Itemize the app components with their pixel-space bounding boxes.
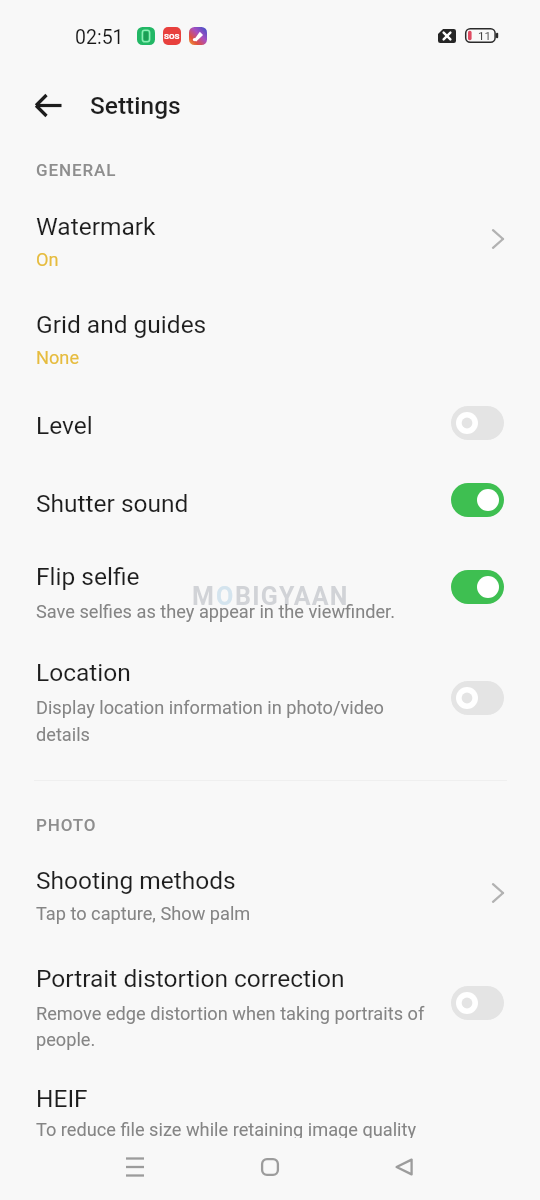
button[interactable]: Back xyxy=(373,1136,435,1198)
button[interactable]: HEIF xyxy=(0,1068,540,1138)
staticText: M xyxy=(192,582,216,611)
button[interactable]: Toggle off xyxy=(451,681,504,715)
staticText: Settings xyxy=(90,91,181,120)
staticText: people. xyxy=(36,1029,96,1050)
staticText: 02:51 xyxy=(75,26,124,49)
button[interactable]: Watermark xyxy=(0,198,540,282)
button[interactable]: Shooting methods xyxy=(0,850,540,934)
button[interactable]: Recent apps xyxy=(104,1136,166,1198)
button[interactable]: Location xyxy=(0,642,540,752)
button[interactable]: Toggle on xyxy=(451,483,504,517)
staticText: Watermark xyxy=(36,212,156,241)
staticText: Tap to capture, Show palm xyxy=(36,903,251,924)
button[interactable]: Back xyxy=(22,79,74,131)
button[interactable]: Flip selfie xyxy=(0,546,540,630)
button[interactable]: Open xyxy=(481,876,515,910)
button[interactable]: Toggle off xyxy=(451,986,504,1020)
staticText: BIGYAAN xyxy=(235,582,349,611)
staticText: None xyxy=(36,347,80,368)
staticText: Shutter sound xyxy=(36,489,189,518)
staticText: Save selfies as they appear in the viewf… xyxy=(36,601,395,622)
button[interactable]: Shutter sound xyxy=(0,473,540,537)
staticText: O xyxy=(216,582,235,611)
staticText: Flip selfie xyxy=(36,562,140,591)
staticText: HEIF xyxy=(36,1084,88,1113)
button[interactable]: Toggle on xyxy=(451,570,504,604)
button[interactable]: Grid and guides xyxy=(0,296,540,380)
button[interactable]: Portrait distortion correction xyxy=(0,948,540,1058)
staticText: Level xyxy=(36,411,93,440)
button[interactable]: Level xyxy=(0,395,540,459)
button[interactable]: Open xyxy=(481,222,515,256)
staticText: GENERAL xyxy=(36,160,117,180)
staticText: Remove edge distortion when taking portr… xyxy=(36,1003,425,1024)
staticText: Location xyxy=(36,658,131,687)
staticText: details xyxy=(36,724,90,745)
staticText: Shooting methods xyxy=(36,866,236,895)
staticText: SOS xyxy=(164,32,180,41)
button[interactable]: Toggle off xyxy=(451,406,504,440)
staticText: Grid and guides xyxy=(36,310,207,339)
staticText: Portrait distortion correction xyxy=(36,964,345,993)
staticText: Display location information in photo/vi… xyxy=(36,697,384,718)
staticText: On xyxy=(36,249,59,270)
button[interactable]: Home xyxy=(239,1136,301,1198)
staticText: To reduce file size while retaining imag… xyxy=(36,1119,417,1138)
staticText: PHOTO xyxy=(36,815,97,835)
staticText: 11 xyxy=(478,29,491,42)
